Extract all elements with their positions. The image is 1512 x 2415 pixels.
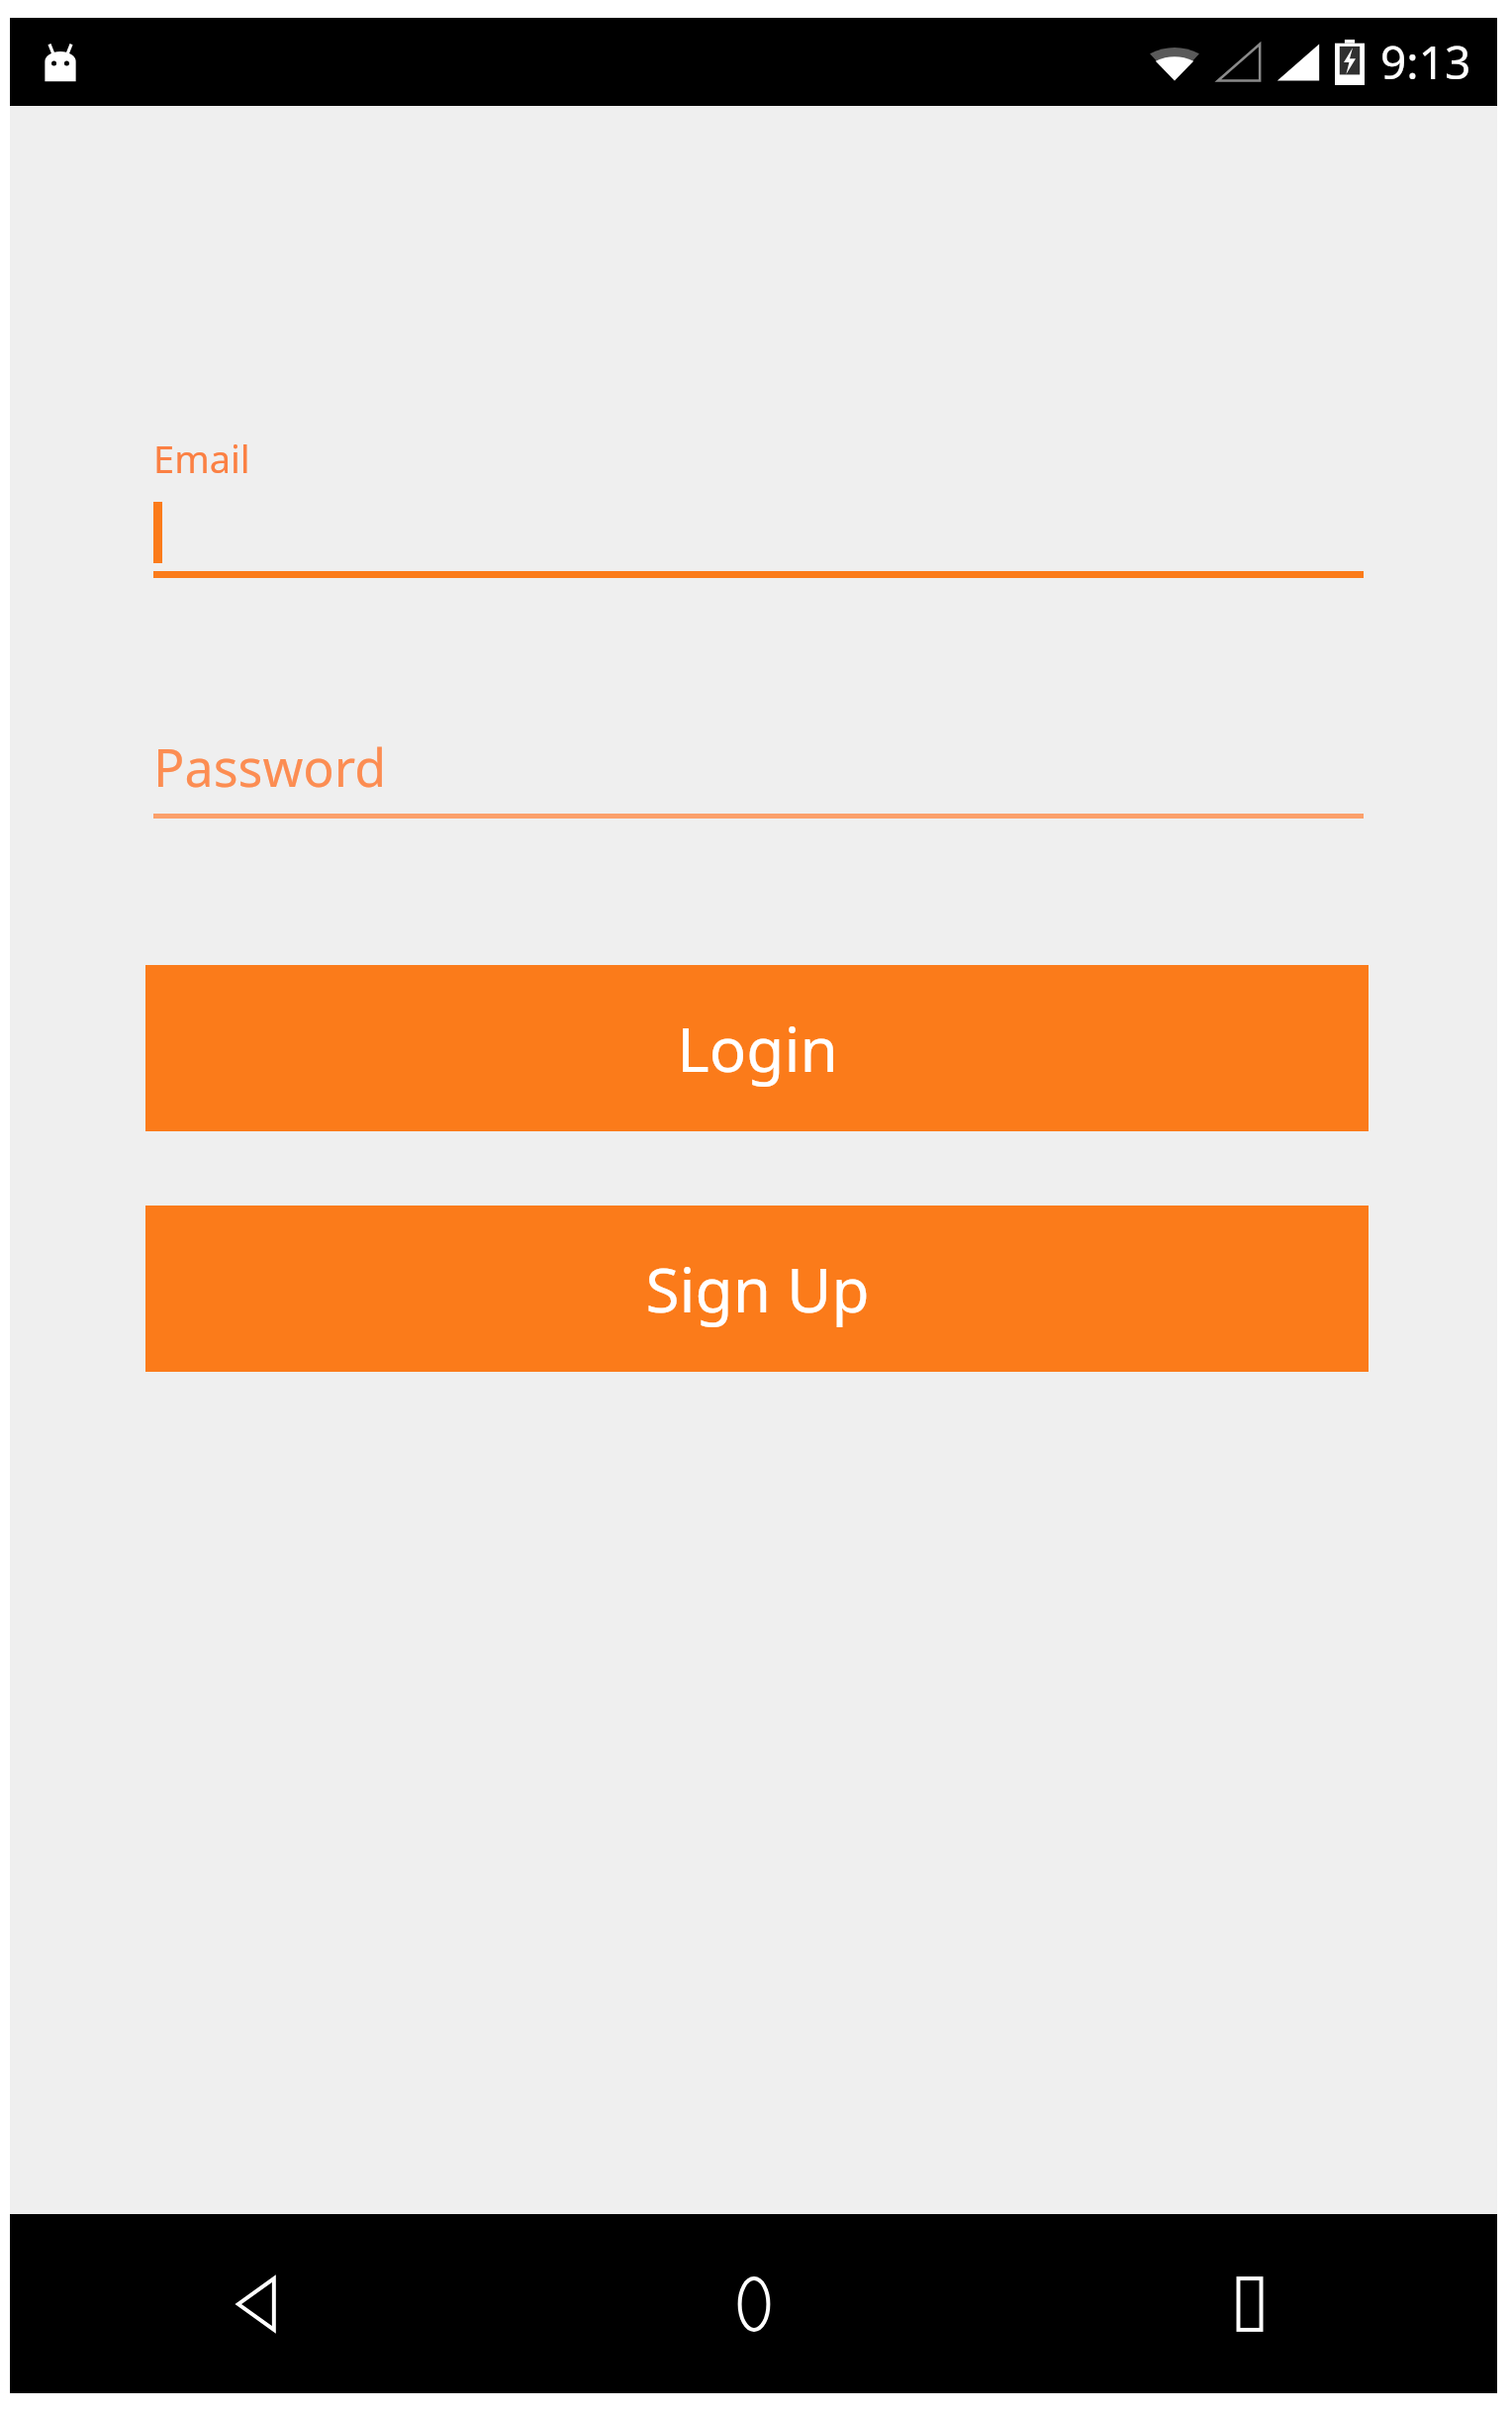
button[interactable]: Recent apps [1001,2214,1497,2393]
button[interactable]: Sign Up [145,1206,1369,1372]
staticText: 9:13 [1380,31,1471,93]
button[interactable]: Home [506,2214,1001,2393]
button[interactable]: Password [10,731,1497,819]
staticText: Email [153,433,250,484]
button[interactable]: Email [10,433,1497,578]
button[interactable]: Back [10,2214,506,2393]
button[interactable]: Login [145,965,1369,1131]
staticText: Password [153,731,387,802]
staticText: Login [677,1007,838,1090]
staticText: Sign Up [645,1247,870,1330]
